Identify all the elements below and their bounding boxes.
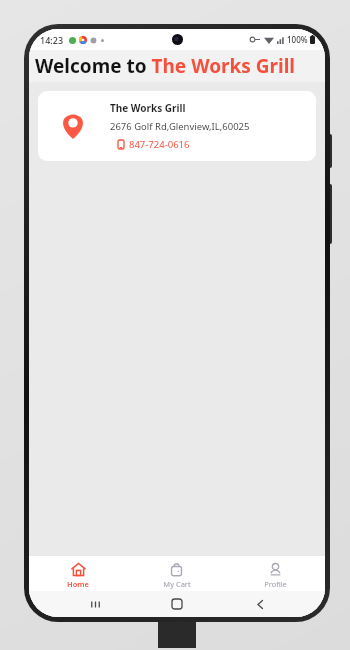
staticText: Welcome to The Works Grill: [35, 53, 296, 79]
staticText: 2676 Golf Rd,Glenview,IL,60025: [110, 120, 250, 133]
staticText: Home: [67, 579, 89, 589]
other: Location: [60, 113, 86, 139]
staticText: 100%: [287, 34, 308, 45]
staticText: Profile: [264, 579, 287, 589]
button[interactable]: Back: [243, 591, 277, 617]
staticText: 14:23: [40, 34, 64, 46]
button[interactable]: Home: [160, 591, 194, 617]
staticText: 847-724-0616: [129, 138, 190, 151]
button[interactable]: Profile: [226, 556, 325, 591]
button[interactable]: Location: [38, 91, 316, 161]
staticText: My Cart: [163, 579, 191, 589]
staticText: The Works Grill: [110, 101, 186, 115]
button[interactable]: 847-724-0616: [110, 138, 190, 151]
button[interactable]: My Cart: [127, 556, 226, 591]
button[interactable]: Home: [29, 556, 127, 591]
button[interactable]: Recent apps: [78, 591, 112, 617]
